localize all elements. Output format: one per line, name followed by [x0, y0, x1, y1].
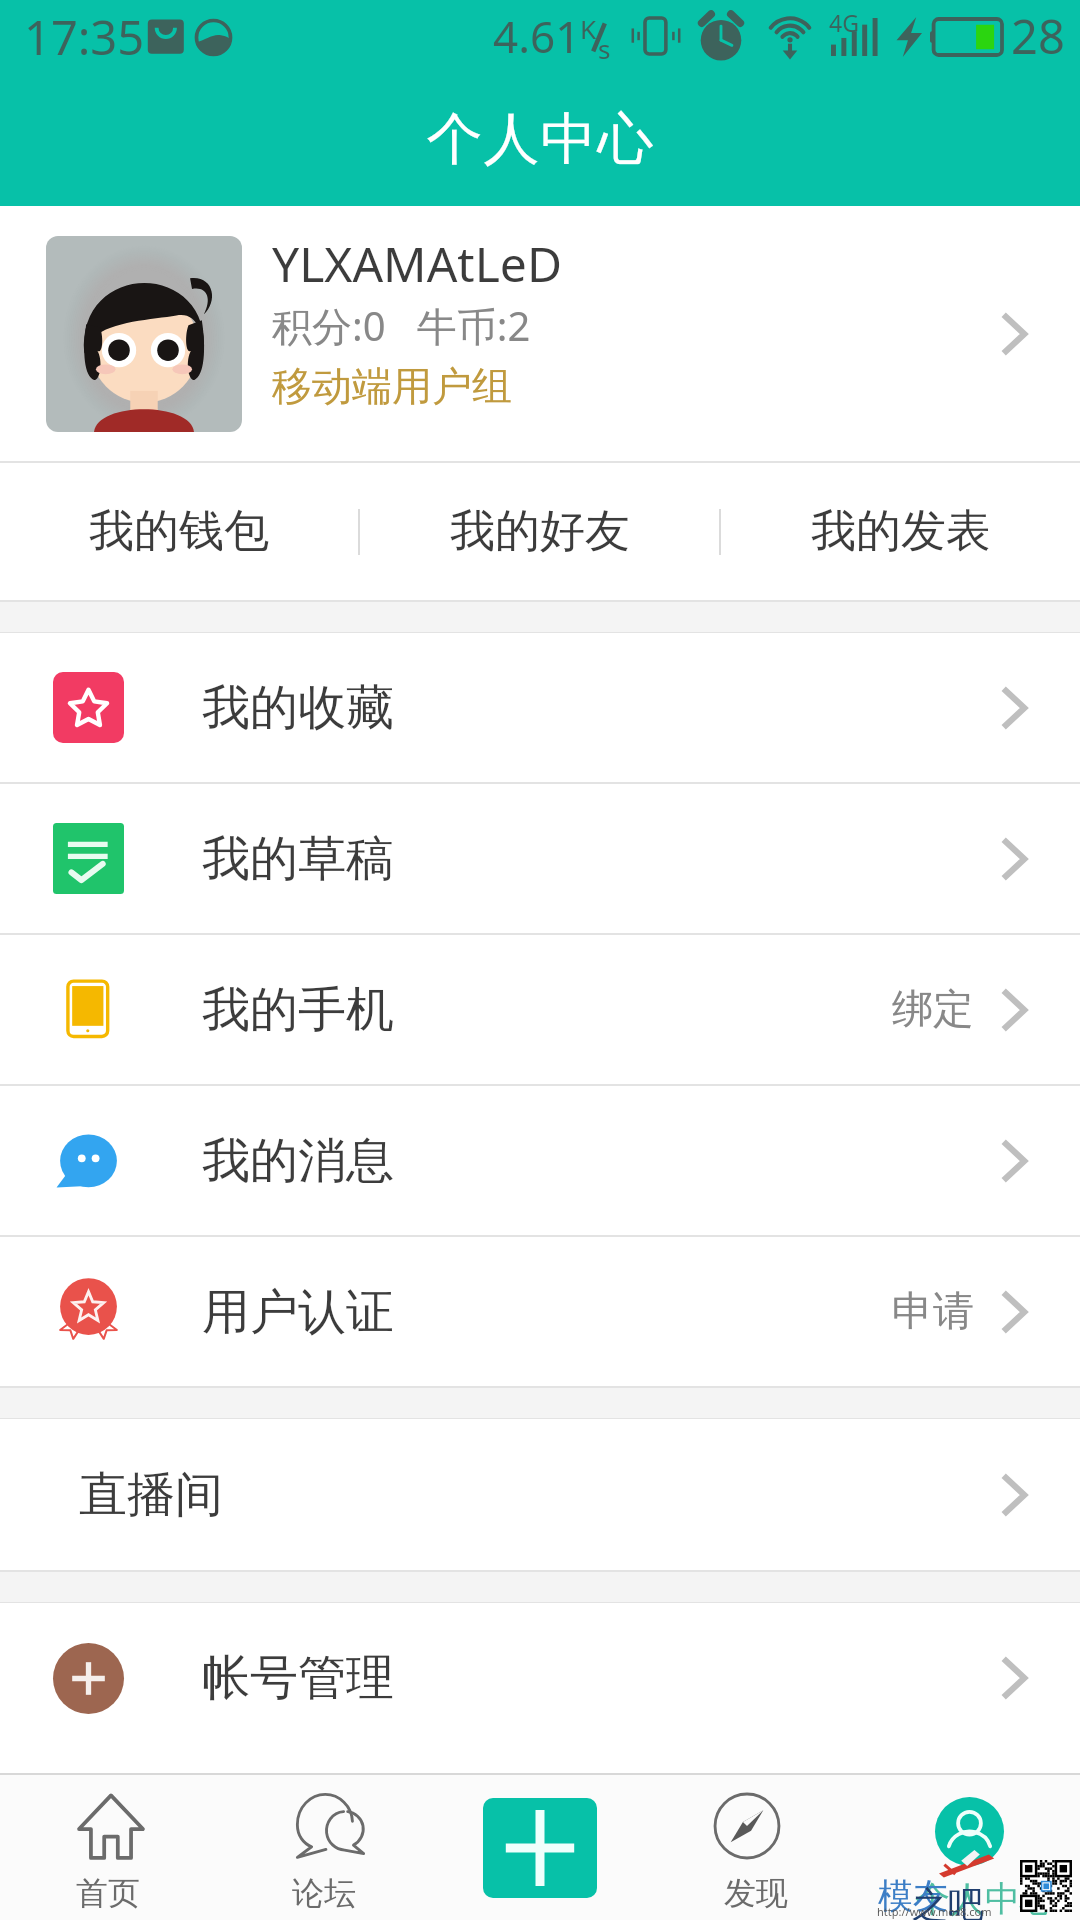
button[interactable]: YLXAMAtLeD: [0, 206, 1080, 461]
button[interactable]: 我的消息: [0, 1086, 1080, 1235]
staticText: 模友: [878, 1874, 948, 1918]
staticText: 28: [1011, 4, 1065, 68]
staticText: 我的草稿: [202, 829, 394, 889]
staticText: 之吧: [912, 1882, 984, 1920]
staticText: 绑定: [892, 984, 974, 1036]
staticText: 申请: [892, 1286, 974, 1338]
staticText: 个人中心: [915, 1877, 1055, 1920]
button[interactable]: 首页: [0, 1775, 216, 1920]
staticText: 移动端用户组: [272, 361, 512, 411]
button[interactable]: 个人中心 Profile: [864, 1775, 1080, 1920]
button[interactable]: 我的好友: [360, 463, 719, 600]
button[interactable]: 我的收藏: [0, 633, 1080, 782]
staticText: 17:35: [24, 5, 145, 69]
button[interactable]: 帐号管理: [0, 1603, 1080, 1753]
staticText: 发现: [724, 1873, 788, 1913]
staticText: 4G: [829, 7, 859, 38]
staticText: 首页: [76, 1873, 140, 1913]
staticText: YLXAMAtLeD: [272, 231, 562, 296]
staticText: 4.61: [493, 6, 581, 66]
button[interactable]: 我的发表: [721, 463, 1080, 600]
button[interactable]: 发现: [648, 1775, 864, 1920]
staticText: 我的手机: [202, 980, 394, 1040]
staticText: 我的收藏: [202, 678, 394, 738]
button[interactable]: 我的钱包: [0, 463, 358, 600]
staticText: 帐号管理: [202, 1648, 394, 1708]
staticText: 我的钱包: [89, 503, 269, 560]
staticText: 我的发表: [811, 503, 991, 560]
staticText: 用户认证: [202, 1282, 394, 1342]
button[interactable]: 发帖 Post: [432, 1775, 648, 1920]
button[interactable]: 我的手机: [0, 935, 1080, 1084]
staticText: 积分:0 牛币:2: [272, 298, 531, 353]
staticText: 论坛: [292, 1873, 356, 1913]
button[interactable]: 直播间: [0, 1419, 1080, 1570]
staticText: 我的消息: [202, 1131, 394, 1191]
staticText: K: [580, 11, 597, 46]
staticText: 我的好友: [450, 503, 630, 560]
staticText: 个人中心: [426, 104, 654, 175]
button[interactable]: 用户认证: [0, 1237, 1080, 1386]
staticText: 直播间: [79, 1465, 223, 1525]
staticText: http://www.moz8.com: [877, 1904, 992, 1919]
staticText: s: [598, 31, 611, 66]
button[interactable]: 论坛: [216, 1775, 432, 1920]
button[interactable]: 我的草稿: [0, 784, 1080, 933]
